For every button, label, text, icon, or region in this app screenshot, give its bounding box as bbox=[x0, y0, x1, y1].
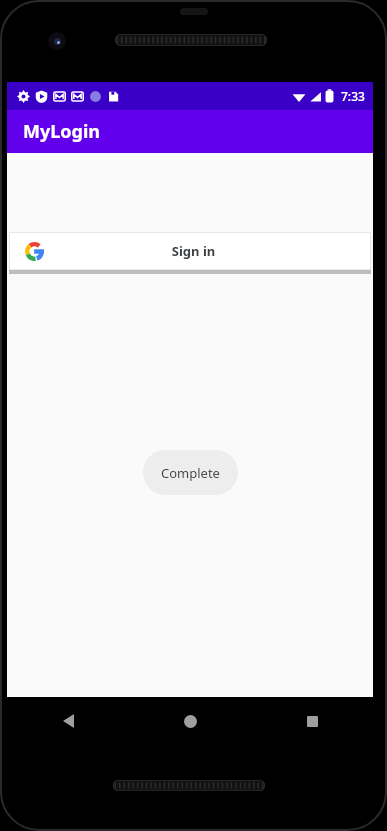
button[interactable]: Back bbox=[7, 697, 129, 745]
button[interactable]: Google bbox=[9, 232, 371, 270]
staticText: MyLogin bbox=[23, 119, 101, 144]
button[interactable]: Complete bbox=[143, 450, 238, 495]
staticText: Complete bbox=[161, 464, 220, 482]
staticText: 7:33 bbox=[341, 88, 365, 104]
other: Google bbox=[25, 242, 44, 261]
button[interactable]: Recent apps bbox=[251, 697, 373, 745]
button[interactable]: Home bbox=[129, 697, 251, 745]
staticText: Sign in bbox=[30, 242, 357, 260]
